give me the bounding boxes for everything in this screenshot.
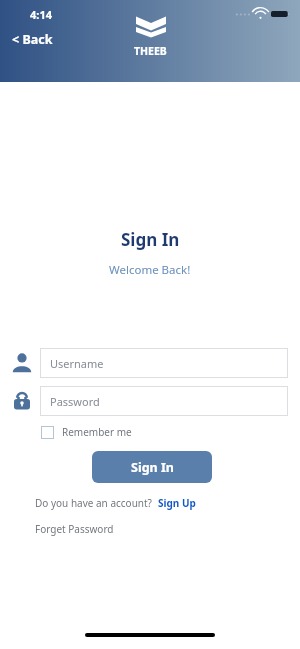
staticText: Welcome Back! [109,262,191,278]
staticText: Do you have an account? [35,496,152,510]
staticText: Sign Up [158,496,196,510]
staticText: Remember me [62,425,132,439]
staticText: THEEB [134,44,167,58]
staticText: Password [50,394,100,409]
button[interactable]: Remember me [41,425,132,439]
staticText: Forget Password [35,522,114,536]
staticText: Username [50,356,104,371]
staticText: Sign In [131,459,174,476]
staticText: Sign In [121,228,180,251]
button[interactable]: < Back [6,28,59,51]
button[interactable]: Sign In [92,451,212,483]
button[interactable]: Sign Up [158,496,196,510]
button[interactable]: Username [40,348,288,378]
staticText: < Back [12,31,53,48]
button[interactable]: Forget Password [35,522,114,536]
button[interactable]: Password [40,386,288,416]
staticText: 4:14 [30,7,52,22]
